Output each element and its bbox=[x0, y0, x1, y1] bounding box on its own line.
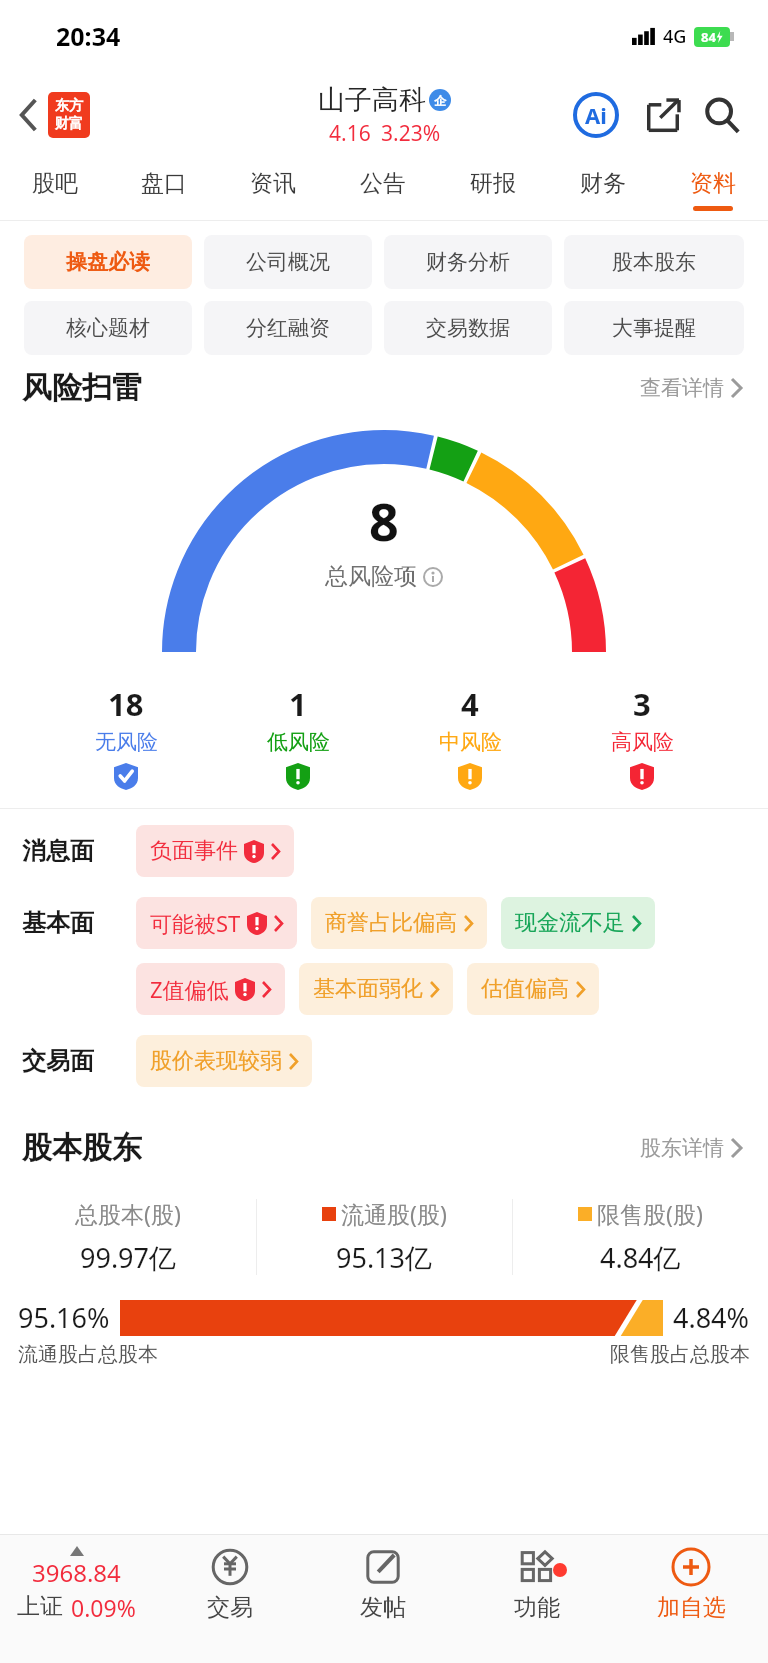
button[interactable]: 大事提醒 bbox=[564, 301, 744, 355]
staticText: 1 bbox=[289, 683, 307, 725]
button[interactable]: 1 bbox=[212, 683, 384, 790]
button[interactable]: 交易 bbox=[153, 1547, 306, 1622]
staticText: 风险扫雷 bbox=[22, 369, 142, 407]
staticText: 无风险 bbox=[95, 729, 158, 755]
button[interactable]: 研报 bbox=[438, 158, 548, 220]
button[interactable]: Z值偏低 bbox=[136, 963, 285, 1015]
button[interactable]: 分红融资 bbox=[204, 301, 372, 355]
button[interactable]: 股本股东 bbox=[564, 235, 744, 289]
staticText: 查看详情 bbox=[640, 375, 724, 401]
staticText: 功能 bbox=[514, 1593, 560, 1622]
staticText: 公司概况 bbox=[246, 249, 330, 275]
staticText: Z值偏低 bbox=[150, 974, 229, 1004]
button[interactable]: 资讯 bbox=[218, 158, 328, 220]
staticText: 基本面 bbox=[22, 908, 94, 938]
button[interactable]: 查看详情 bbox=[636, 371, 746, 405]
staticText: 股东详情 bbox=[640, 1135, 724, 1161]
button[interactable]: 可能被ST bbox=[136, 897, 297, 949]
staticText: 中风险 bbox=[439, 729, 502, 755]
staticText: 3968.84 bbox=[32, 1556, 121, 1589]
button[interactable]: Share bbox=[642, 94, 684, 136]
button[interactable]: 估值偏高 bbox=[467, 963, 599, 1015]
button[interactable]: 3968.84 bbox=[0, 1546, 153, 1623]
staticText: 财富 bbox=[55, 115, 83, 133]
staticText: 上证 bbox=[17, 1592, 63, 1621]
button[interactable]: 股东详情 bbox=[636, 1131, 746, 1165]
staticText: 高风险 bbox=[611, 729, 674, 755]
staticText: 交易面 bbox=[22, 1046, 94, 1076]
staticText: 资讯 bbox=[250, 169, 296, 198]
staticText: 总股本(股) bbox=[75, 1198, 181, 1229]
staticText: 交易数据 bbox=[426, 315, 510, 341]
staticText: 0.09% bbox=[71, 1592, 136, 1623]
staticText: 股本股东 bbox=[22, 1129, 142, 1167]
staticText: 研报 bbox=[470, 169, 516, 198]
staticText: 4 bbox=[461, 683, 479, 725]
staticText: 核心题材 bbox=[66, 315, 150, 341]
staticText: 股本股东 bbox=[612, 249, 696, 275]
staticText: 低风险 bbox=[267, 729, 330, 755]
staticText: 84 bbox=[701, 28, 716, 46]
staticText: 消息面 bbox=[22, 836, 94, 866]
staticText: 大事提醒 bbox=[612, 315, 696, 341]
button[interactable]: 盘口 bbox=[109, 158, 218, 220]
staticText: 发帖 bbox=[360, 1593, 406, 1622]
button[interactable]: 发帖 bbox=[306, 1547, 460, 1622]
staticText: 财务 bbox=[580, 169, 626, 198]
button[interactable]: 公司概况 bbox=[204, 235, 372, 289]
button[interactable]: 3 bbox=[556, 683, 728, 790]
button[interactable]: 基本面弱化 bbox=[299, 963, 453, 1015]
button[interactable]: Back bbox=[14, 86, 96, 144]
staticText: 20:34 bbox=[56, 19, 121, 53]
staticText: 东方 bbox=[55, 97, 83, 115]
button[interactable]: 公告 bbox=[328, 158, 438, 220]
staticText: 公告 bbox=[360, 169, 406, 198]
staticText: 估值偏高 bbox=[481, 975, 569, 1003]
button[interactable]: 现金流不足 bbox=[501, 897, 655, 949]
staticText: 4.84亿 bbox=[600, 1239, 681, 1276]
staticText: 限售股占总股本 bbox=[610, 1342, 750, 1367]
button[interactable]: 功能 bbox=[460, 1547, 614, 1622]
button[interactable]: 股吧 bbox=[0, 158, 109, 220]
button[interactable]: 交易数据 bbox=[384, 301, 552, 355]
staticText: 4.16 bbox=[329, 119, 371, 148]
button[interactable]: 18 bbox=[40, 683, 212, 790]
button[interactable]: 核心题材 bbox=[24, 301, 192, 355]
staticText: 山子高科 bbox=[318, 83, 426, 117]
button[interactable]: 资料 bbox=[658, 158, 768, 220]
button[interactable]: 财务分析 bbox=[384, 235, 552, 289]
staticText: 交易 bbox=[207, 1593, 253, 1622]
staticText: 流通股占总股本 bbox=[18, 1342, 158, 1367]
button[interactable]: AI assistant bbox=[572, 91, 620, 139]
staticText: 可能被ST bbox=[150, 908, 241, 938]
staticText: 流通股(股) bbox=[341, 1198, 447, 1229]
staticText: 现金流不足 bbox=[515, 909, 625, 937]
staticText: 分红融资 bbox=[246, 315, 330, 341]
staticText: 总风险项 bbox=[325, 562, 417, 591]
staticText: 商誉占比偏高 bbox=[325, 909, 457, 937]
staticText: 3.23% bbox=[381, 119, 441, 148]
staticText: 4.84% bbox=[673, 1299, 750, 1336]
staticText: 95.16% bbox=[18, 1299, 110, 1336]
staticText: 8 bbox=[369, 485, 399, 556]
button[interactable]: 股价表现较弱 bbox=[136, 1035, 312, 1087]
button[interactable]: 操盘必读 bbox=[24, 235, 192, 289]
button[interactable]: 财务 bbox=[548, 158, 658, 220]
staticText: 负面事件 bbox=[150, 837, 238, 865]
staticText: 18 bbox=[108, 683, 144, 725]
button[interactable]: 加自选 bbox=[614, 1547, 768, 1622]
staticText: 加自选 bbox=[657, 1593, 726, 1622]
button[interactable]: Search bbox=[700, 93, 744, 137]
staticText: 资料 bbox=[690, 169, 736, 198]
button[interactable]: 商誉占比偏高 bbox=[311, 897, 487, 949]
staticText: 3 bbox=[633, 683, 651, 725]
staticText: 财务分析 bbox=[426, 249, 510, 275]
staticText: 4G bbox=[663, 24, 687, 49]
staticText: 股吧 bbox=[32, 169, 78, 198]
staticText: 基本面弱化 bbox=[313, 975, 423, 1003]
button[interactable]: 4 bbox=[384, 683, 556, 790]
staticText: 限售股(股) bbox=[597, 1198, 703, 1229]
button[interactable]: 负面事件 bbox=[136, 825, 294, 877]
staticText: 99.97亿 bbox=[80, 1239, 177, 1276]
staticText: 股价表现较弱 bbox=[150, 1047, 282, 1075]
